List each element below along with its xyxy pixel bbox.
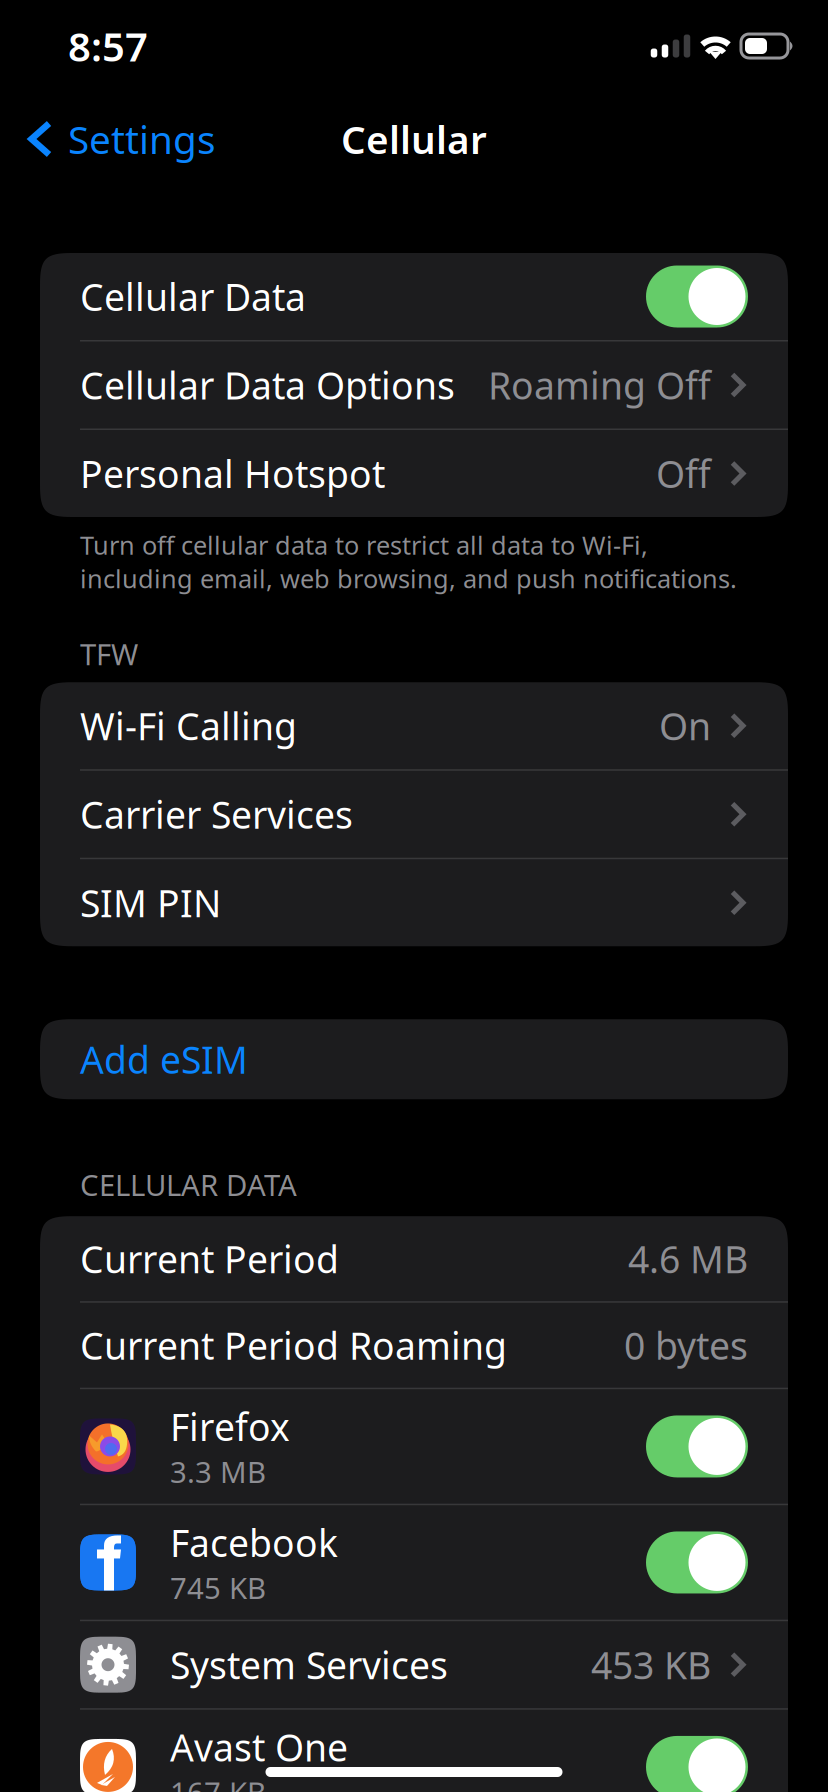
staticText: TFW [80, 634, 138, 673]
staticText: 4.6 MB [628, 1234, 748, 1283]
staticText: Settings [68, 113, 216, 165]
staticText: Cellular Data Options [80, 360, 455, 410]
staticText: Current Period Roaming [80, 1320, 507, 1370]
button[interactable]: SIM PIN [40, 859, 788, 946]
button[interactable]: Cellular Data [40, 253, 788, 340]
staticText: Roaming Off [488, 360, 711, 410]
button[interactable]: Add eSIM [40, 1019, 788, 1099]
staticText: Carrier Services [80, 789, 353, 839]
staticText: Current Period [80, 1234, 339, 1283]
button[interactable]: Personal Hotspot [40, 430, 788, 517]
button[interactable]: Current Period [40, 1216, 788, 1301]
button[interactable]: Wi-Fi Calling [40, 682, 788, 769]
staticText: Avast One [170, 1722, 348, 1772]
staticText: Off [656, 449, 711, 498]
staticText: Wi-Fi Calling [80, 701, 297, 750]
staticText: 167 KB [170, 1773, 266, 1792]
staticText: 0 bytes [624, 1320, 748, 1370]
button[interactable]: Avast One [40, 1710, 788, 1792]
staticText: On [659, 701, 711, 750]
staticText: Turn off cellular data to restrict all d… [80, 528, 737, 595]
staticText: Firefox [170, 1402, 290, 1451]
staticText: Cellular Data [80, 272, 306, 321]
staticText: 3.3 MB [170, 1452, 266, 1491]
button[interactable]: Back to Settings [0, 101, 216, 177]
staticText: SIM PIN [80, 878, 221, 927]
staticText: Facebook [170, 1518, 338, 1567]
button[interactable]: Carrier Services [40, 771, 788, 858]
button[interactable]: Current Period Roaming [40, 1303, 788, 1388]
staticText: CELLULAR DATA [80, 1165, 297, 1204]
staticText: 8:57 [68, 19, 148, 72]
staticText: Cellular [341, 113, 487, 165]
staticText: Add eSIM [80, 1034, 248, 1084]
staticText: 745 KB [170, 1568, 266, 1607]
staticText: System Services [170, 1640, 448, 1689]
staticText: Personal Hotspot [80, 449, 385, 498]
button[interactable]: Facebook [40, 1505, 788, 1620]
button[interactable]: System Services [40, 1621, 788, 1708]
staticText: 453 KB [591, 1640, 711, 1689]
button[interactable]: Cellular Data Options [40, 341, 788, 428]
button[interactable]: Firefox [40, 1389, 788, 1504]
